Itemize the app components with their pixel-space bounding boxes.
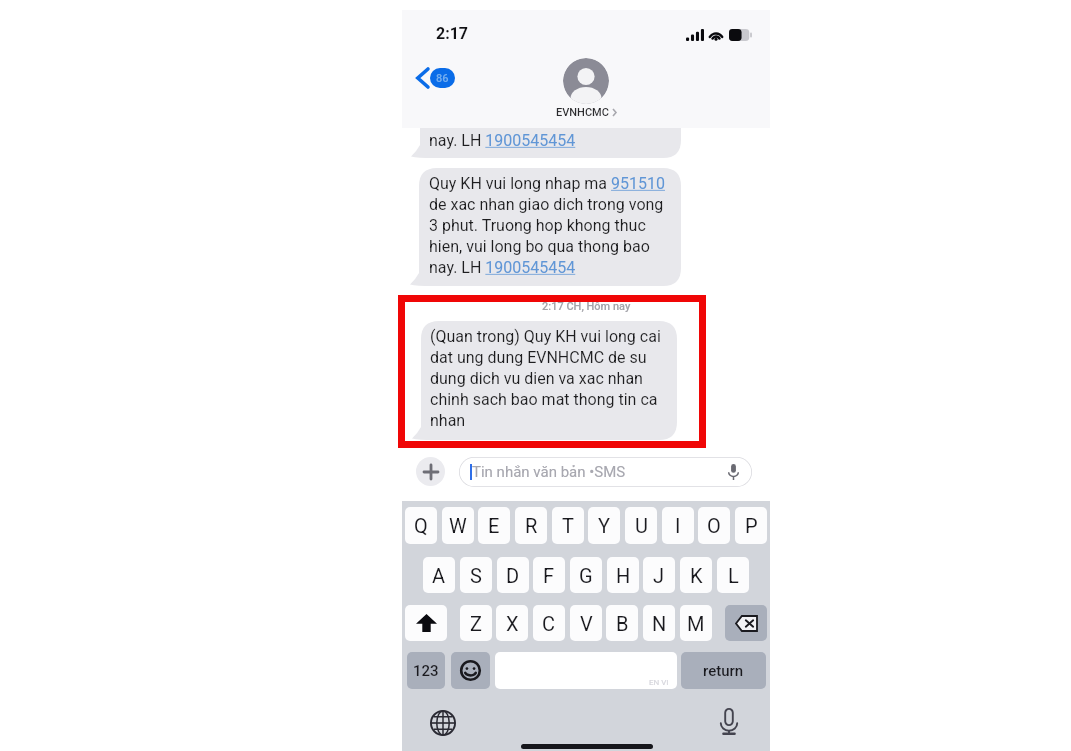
staticText: nhan [430, 411, 466, 430]
staticText: M [687, 612, 705, 635]
button[interactable]: I [662, 507, 694, 544]
button[interactable]: M [680, 605, 712, 641]
staticText: I [675, 514, 681, 537]
staticText: U [635, 514, 648, 537]
button[interactable]: E [478, 507, 510, 544]
staticText: W [449, 514, 467, 537]
button[interactable]: (Quan trong) Quy KH vui long cai [416, 321, 677, 440]
staticText: dat ung dung EVNHCMC de su [430, 348, 647, 367]
staticText: nay. LH 1900545454 [429, 131, 576, 150]
button[interactable]: Change keyboard [430, 710, 456, 736]
staticText: chinh sach bao mat thong tin ca [430, 390, 658, 409]
button[interactable]: nay. LH 1900545454 [415, 100, 681, 158]
button[interactable]: A [423, 557, 455, 593]
button[interactable]: Add attachment [416, 457, 445, 486]
staticText: J [653, 564, 665, 587]
button[interactable]: D [497, 557, 529, 593]
button[interactable]: N [643, 605, 675, 641]
staticText: C [542, 612, 556, 635]
staticText: A [432, 564, 446, 587]
button[interactable]: S [460, 557, 492, 593]
staticText: 3 phut. Truong hop khong thuc [429, 216, 646, 235]
button[interactable]: return [681, 652, 766, 689]
button[interactable]: U [625, 507, 657, 544]
staticText: Quy KH vui long nhap ma 951510 [429, 174, 665, 193]
button[interactable]: V [570, 605, 602, 641]
button[interactable]: Z [460, 605, 492, 641]
staticText: de xac nhan giao dich trong vong [429, 195, 664, 214]
staticText: D [506, 564, 520, 587]
staticText: K [690, 564, 703, 587]
button[interactable]: G [570, 557, 602, 593]
button[interactable]: 123 [407, 652, 445, 689]
button[interactable]: X [496, 605, 528, 641]
staticText: nay. LH 1900545454 [429, 258, 576, 277]
button[interactable]: J [643, 557, 675, 593]
button[interactable]: EVNHCMC [536, 58, 636, 119]
button[interactable]: Space [495, 652, 677, 689]
staticText: S [470, 564, 482, 587]
staticText: 86 [436, 72, 449, 85]
button[interactable]: P [735, 507, 767, 544]
button[interactable]: Emoji [451, 652, 490, 689]
staticText: L [728, 564, 739, 587]
staticText: T [562, 514, 574, 537]
staticText: Z [470, 612, 482, 635]
staticText: R [525, 514, 538, 537]
button[interactable]: O [698, 507, 730, 544]
button[interactable]: Dictate [719, 708, 739, 735]
button[interactable]: B [606, 605, 638, 641]
staticText: N [652, 612, 667, 635]
staticText: dung dich vu dien va xac nhan [430, 369, 643, 388]
button[interactable]: C [533, 605, 565, 641]
staticText: EVNHCMC [556, 106, 609, 119]
staticText: return [703, 662, 744, 680]
button[interactable]: Shift [405, 605, 447, 641]
button[interactable]: W [442, 507, 474, 544]
staticText: Q [414, 514, 428, 537]
staticText: H [616, 564, 631, 587]
button[interactable]: Q [405, 507, 437, 544]
staticText: 123 [413, 662, 439, 680]
button[interactable]: T [552, 507, 584, 544]
staticText: EN VI [649, 678, 669, 687]
button[interactable]: K [680, 557, 712, 593]
button[interactable]: Quy KH vui long nhap ma 951510 [414, 168, 681, 286]
button[interactable]: L [717, 557, 749, 593]
staticText: X [506, 612, 519, 635]
staticText: O [707, 514, 721, 537]
button[interactable]: Y [588, 507, 620, 544]
staticText: B [616, 612, 629, 635]
staticText: 2:17 [436, 24, 469, 43]
staticText: V [580, 612, 593, 635]
button[interactable]: Backspace [725, 605, 767, 641]
staticText: E [488, 514, 500, 537]
staticText: hien, vui long bo qua thong bao [429, 237, 650, 256]
button[interactable]: F [533, 557, 565, 593]
staticText: G [579, 564, 593, 587]
staticText: Y [598, 514, 611, 537]
staticText: (Quan trong) Quy KH vui long cai [430, 327, 661, 346]
button[interactable]: Tin nhắn văn bản •SMS [459, 457, 752, 487]
button[interactable]: R [515, 507, 547, 544]
button[interactable]: Back [416, 67, 455, 89]
staticText: 2:17 CH, Hôm nay [542, 300, 631, 313]
staticText: Tin nhắn văn bản •SMS [472, 463, 626, 481]
staticText: P [745, 514, 758, 537]
button[interactable]: Voice input [728, 464, 739, 480]
button[interactable]: H [607, 557, 639, 593]
staticText: F [543, 564, 555, 587]
